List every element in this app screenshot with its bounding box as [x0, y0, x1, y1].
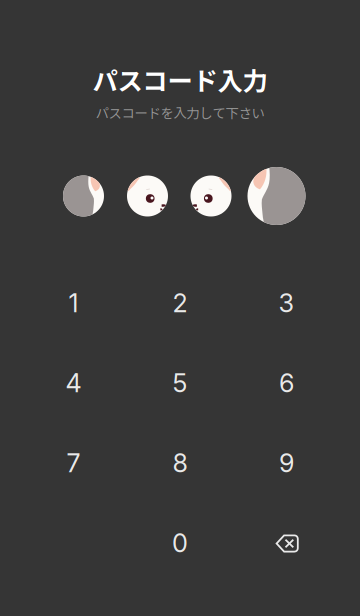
- staticText: 0: [172, 528, 188, 558]
- staticText: 9: [279, 448, 294, 478]
- button[interactable]: 0: [136, 513, 224, 573]
- staticText: 4: [65, 368, 81, 398]
- staticText: 7: [66, 448, 80, 478]
- staticText: 5: [172, 368, 187, 398]
- staticText: パスコード入力: [92, 61, 267, 98]
- button[interactable]: 2: [136, 273, 224, 333]
- staticText: パスコードを入力して下さい: [95, 103, 264, 122]
- button[interactable]: Delete: [243, 513, 331, 573]
- button[interactable]: 9: [242, 433, 330, 493]
- staticText: 3: [278, 288, 294, 318]
- staticText: 1: [68, 288, 78, 318]
- staticText: 8: [172, 448, 187, 478]
- staticText: 6: [279, 368, 294, 398]
- button[interactable]: 6: [242, 353, 330, 413]
- button[interactable]: 1: [29, 273, 117, 333]
- button[interactable]: 7: [29, 433, 117, 493]
- button[interactable]: 3: [242, 273, 330, 333]
- staticText: 2: [172, 288, 187, 318]
- button[interactable]: 5: [136, 353, 224, 413]
- button[interactable]: 4: [29, 353, 117, 413]
- button[interactable]: 8: [136, 433, 224, 493]
